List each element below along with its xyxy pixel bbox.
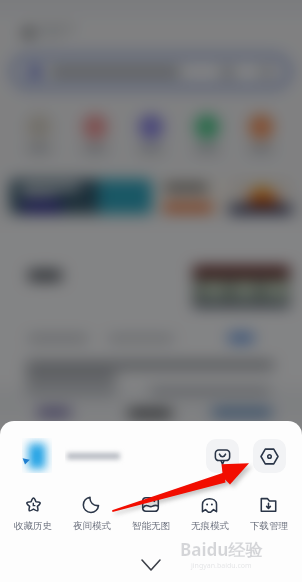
staticText: 夜间模式 [73,520,111,532]
staticText: 无痕模式 [191,520,229,532]
staticText: 智能无图 [132,520,170,532]
button[interactable]: Settings [253,439,286,473]
button[interactable]: 智能无图 [121,495,180,532]
button[interactable]: 无痕模式 [180,495,239,532]
staticText: 下载管理 [250,520,288,532]
staticText: jingyan.baidu.com [191,561,252,571]
staticText: Baidu经验 [180,538,263,561]
button[interactable]: Messages [206,439,239,473]
button[interactable]: Collapse [0,548,302,582]
button[interactable]: 收藏历史 [4,495,62,532]
button[interactable]: Account [22,438,52,473]
staticText: 收藏历史 [14,520,52,532]
button[interactable]: 夜间模式 [62,495,121,532]
other: Collapse [142,560,160,570]
button[interactable]: 下载管理 [239,495,298,532]
